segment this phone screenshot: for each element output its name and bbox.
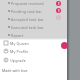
button[interactable]: Executed task bar — [0, 23, 67, 31]
staticText: Pending task bar — [11, 9, 43, 14]
staticText: 1 — [58, 2, 60, 6]
button[interactable]: My Quizes — [0, 39, 67, 47]
staticText: My Profile — [10, 49, 29, 54]
button[interactable]: Add — [61, 42, 68, 49]
staticText: Accepted task bar — [11, 17, 44, 22]
staticText: Upgrade — [10, 58, 26, 63]
button[interactable]: Upgrade — [0, 56, 67, 64]
staticText: Report — [11, 33, 24, 38]
button[interactable]: Report — [0, 31, 67, 39]
staticText: My Quizes — [10, 41, 29, 46]
button[interactable]: My Profile — [0, 47, 67, 55]
staticText: Proposal received — [11, 1, 44, 6]
button[interactable]: Accepted task bar — [0, 15, 67, 23]
button[interactable]: Proposal received — [0, 0, 67, 7]
staticText: 1 — [58, 9, 60, 13]
staticText: Executed task bar — [11, 25, 44, 30]
button[interactable]: Pending task bar — [0, 7, 67, 15]
staticText: Made with love — [2, 68, 28, 73]
